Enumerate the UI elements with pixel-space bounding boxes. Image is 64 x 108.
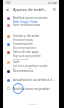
staticText: Recordatorios (13, 69, 34, 73)
staticText: Elige qué apps pueden (13, 54, 41, 58)
staticText: Selección de apps (13, 50, 39, 54)
button[interactable]: Sonido y vibración (3, 34, 59, 42)
staticText: enviar avisos (13, 58, 29, 60)
button[interactable]: Notificaciones mejoradas (3, 86, 59, 95)
staticText: Notificaciones mejoradas (13, 87, 50, 91)
staticText: Conversación (13, 42, 33, 46)
staticText: Sin conversaciones (13, 46, 37, 50)
button[interactable]: Selección de apps (3, 50, 59, 60)
staticText: 9:41 (6, 1, 11, 4)
button[interactable]: Leer notificaciones (3, 23, 59, 34)
button[interactable]: Actualización automática del software (3, 78, 59, 86)
staticText: Leer notificaciones (13, 23, 41, 27)
staticText: Sonido y vibración (13, 34, 40, 38)
staticText: Ajustes de notificación (13, 7, 49, 12)
button[interactable]: Leds (3, 60, 59, 69)
staticText: Reloj, Gmail y 3 más (13, 20, 38, 23)
button[interactable]: Recordatorios (3, 69, 59, 78)
staticText: Notificaciones recientes (13, 16, 48, 20)
staticText: Leds (13, 60, 20, 64)
button[interactable]: Back (3, 5, 13, 14)
button[interactable]: Notificaciones recientes (3, 16, 59, 23)
staticText: Actualización automática del software (13, 78, 56, 82)
button[interactable]: Search (49, 5, 59, 14)
staticText: Predeterminada (13, 38, 33, 42)
button[interactable]: Conversación (3, 42, 59, 50)
staticText: llega una notificación (13, 68, 39, 69)
staticText: Las luces parpadean cuando (13, 64, 48, 68)
